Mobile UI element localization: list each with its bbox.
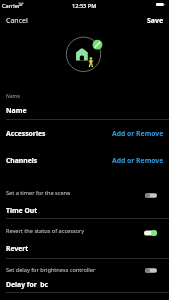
staticText: Time Out xyxy=(6,206,38,215)
staticText: Add or Remove xyxy=(112,156,164,165)
staticText: Save xyxy=(147,16,164,26)
staticText: Add or Remove xyxy=(112,129,164,138)
other: Scene icon xyxy=(64,35,104,75)
staticText: Revert xyxy=(6,244,29,253)
button[interactable]: Toggle on xyxy=(144,230,157,236)
staticText: Set a timer for the scene xyxy=(6,189,71,197)
staticText: Accessories xyxy=(6,129,46,138)
staticText: Set delay for brightness controller xyxy=(6,266,96,274)
staticText: 12:53 PM xyxy=(72,2,97,10)
staticText: Name xyxy=(6,106,27,115)
staticText: Revert the status of accessory xyxy=(6,227,85,235)
staticText: Delay for bc xyxy=(6,280,49,289)
button[interactable]: Toggle off xyxy=(145,268,157,273)
staticText: Channels xyxy=(6,156,38,165)
staticText: Carrier xyxy=(2,2,21,10)
button[interactable]: Cancel xyxy=(2,13,32,29)
button[interactable]: Toggle off xyxy=(145,193,157,198)
staticText: Name xyxy=(6,93,21,100)
button[interactable]: Save xyxy=(143,13,168,29)
staticText: Cancel xyxy=(6,16,28,26)
